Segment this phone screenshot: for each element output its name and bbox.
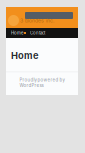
staticText: Home xyxy=(11,50,39,61)
button[interactable]: Home xyxy=(6,30,28,36)
staticText: Home xyxy=(11,30,23,36)
staticText: 3 blondes inc. xyxy=(20,17,55,24)
button[interactable]: Contact xyxy=(28,30,48,36)
staticText: Proudly powered by WordPress xyxy=(19,77,64,88)
staticText: Contact xyxy=(30,30,45,36)
